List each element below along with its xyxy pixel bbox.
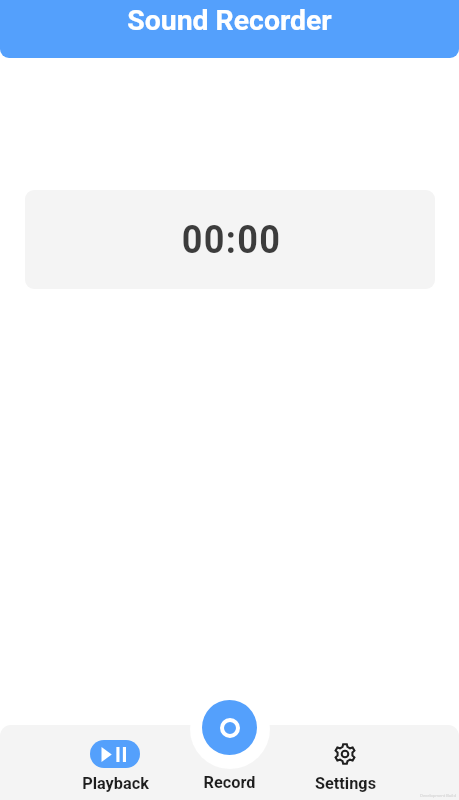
staticText: Sound Recorder <box>0 4 459 37</box>
staticText: Record <box>181 773 278 792</box>
staticText: Playback <box>82 774 149 793</box>
staticText: 00:00 <box>182 218 281 263</box>
other: Record <box>202 700 257 755</box>
button[interactable]: Playback <box>65 729 165 800</box>
button[interactable]: Settings <box>295 729 395 800</box>
button[interactable]: Record <box>181 700 278 793</box>
staticText: Development Build <box>420 793 456 798</box>
staticText: Settings <box>315 774 376 793</box>
